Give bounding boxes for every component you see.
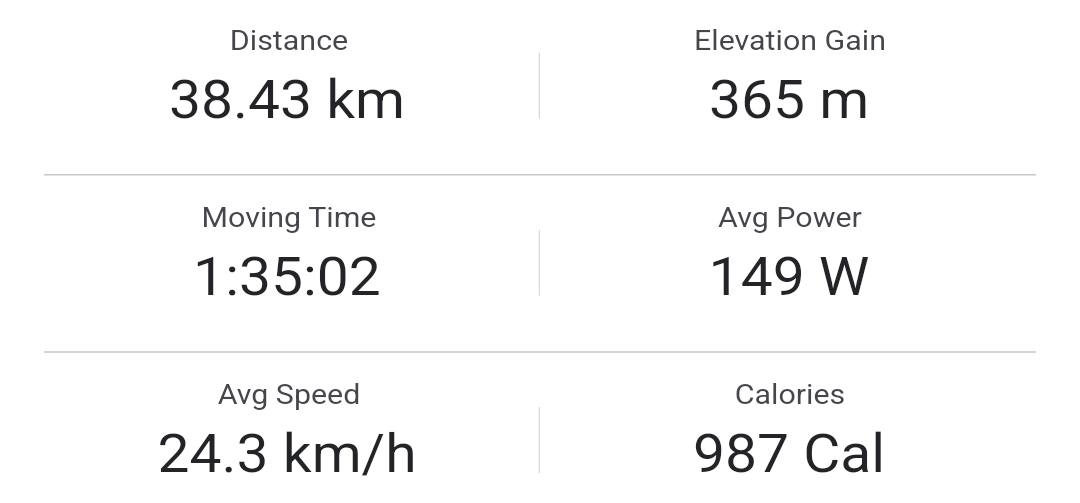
staticText: Avg Speed — [39, 378, 539, 412]
staticText: 149 W — [539, 245, 1039, 308]
staticText: 1:35:02 — [37, 245, 537, 308]
staticText: 987 Cal — [539, 422, 1039, 485]
staticText: Elevation Gain — [540, 24, 1040, 58]
staticText: 38.43 km — [37, 68, 537, 131]
staticText: Calories — [540, 378, 1040, 412]
staticText: Moving Time — [39, 201, 539, 235]
staticText: 365 m — [539, 68, 1039, 131]
staticText: Distance — [39, 24, 539, 58]
button[interactable] — [41, 357, 537, 503]
button[interactable] — [41, 3, 537, 173]
staticText: Avg Power — [540, 201, 1040, 235]
button[interactable] — [41, 180, 537, 350]
button[interactable] — [542, 3, 1038, 173]
button[interactable] — [542, 357, 1038, 503]
button[interactable] — [542, 180, 1038, 350]
staticText: 24.3 km/h — [37, 422, 537, 485]
